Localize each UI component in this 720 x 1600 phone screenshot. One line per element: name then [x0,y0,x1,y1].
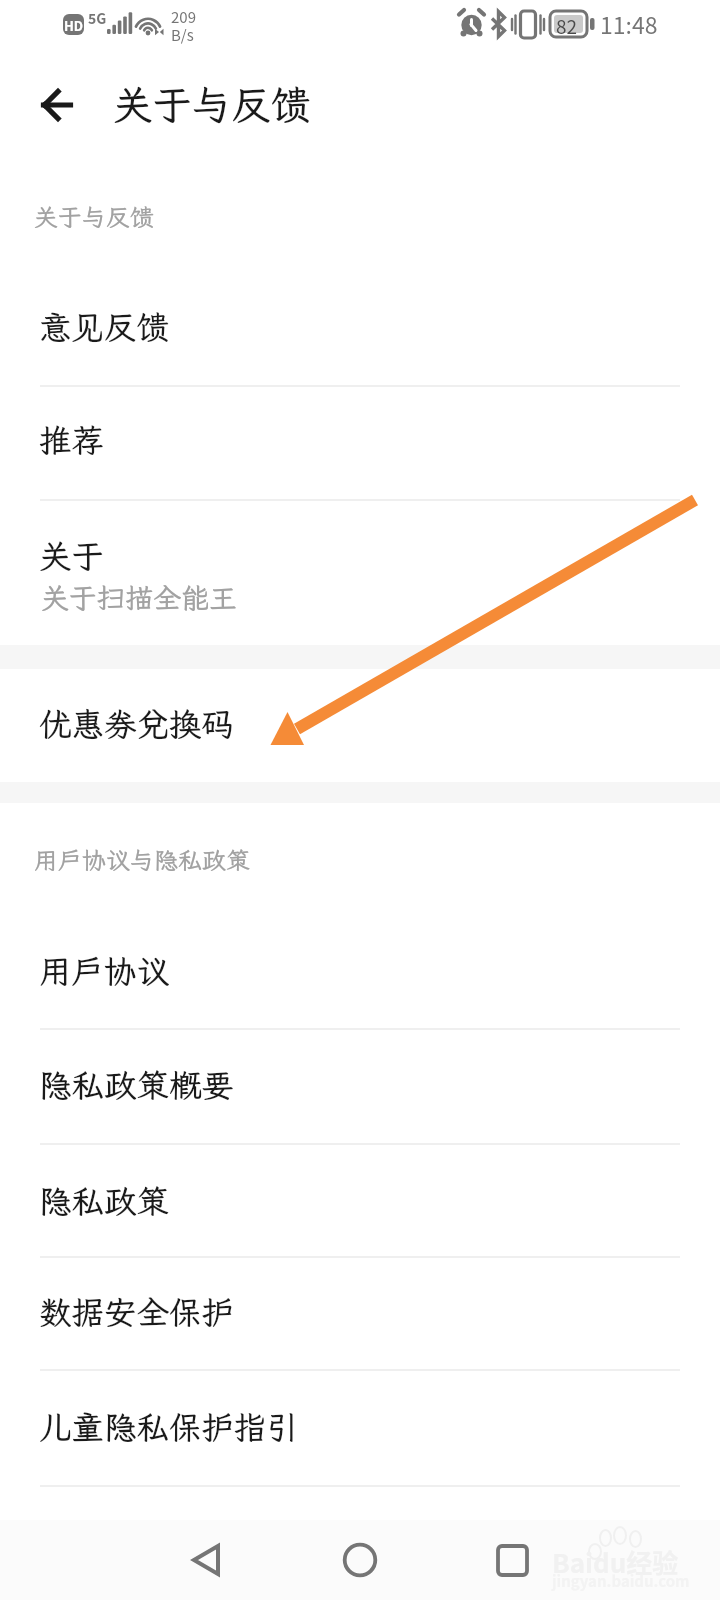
button[interactable]: 优惠券兑换码 [0,669,720,782]
button[interactable]: 数据安全保护 [0,1257,720,1369]
button[interactable]: 隐私政策 [0,1144,720,1256]
button[interactable]: 隐私政策概要 [0,1029,720,1143]
staticText: 用户协议 [39,949,170,992]
staticText: B/s [171,24,194,46]
button[interactable]: Back [27,75,87,135]
staticText: 5G [88,8,107,28]
staticText: 关于与反馈 [34,201,154,233]
button[interactable]: Recent apps [472,1520,552,1600]
staticText: jingyan.baidu.com [552,1570,690,1592]
staticText: 隐私政策概要 [39,1063,235,1106]
staticText: 用户协议与隐私政策 [34,844,250,876]
staticText: 儿童隐私保护指引 [39,1405,300,1448]
staticText: 11:48 [600,7,658,40]
button[interactable]: Home [320,1520,400,1600]
staticText: 关于扫描全能王 [41,579,238,616]
button[interactable]: 儿童隐私保护指引 [0,1370,720,1485]
staticText: 209 [171,6,196,28]
button[interactable]: 用户协议 [0,915,720,1028]
staticText: 数据安全保护 [39,1290,235,1333]
staticText: 82 [556,12,578,40]
staticText: HD [64,16,84,35]
button[interactable]: 意见反馈 [0,270,720,385]
staticText: 推荐 [39,418,105,461]
staticText: 关于与反馈 [113,78,311,130]
button[interactable]: 推荐 [0,386,720,499]
staticText: 优惠券兑换码 [39,702,235,745]
button[interactable]: 关于 [0,500,720,645]
staticText: Baidu经验 [552,1543,679,1581]
staticText: 隐私政策 [39,1179,170,1222]
staticText: 关于 [39,534,105,577]
button[interactable]: Back [165,1520,245,1600]
staticText: 意见反馈 [39,305,170,348]
